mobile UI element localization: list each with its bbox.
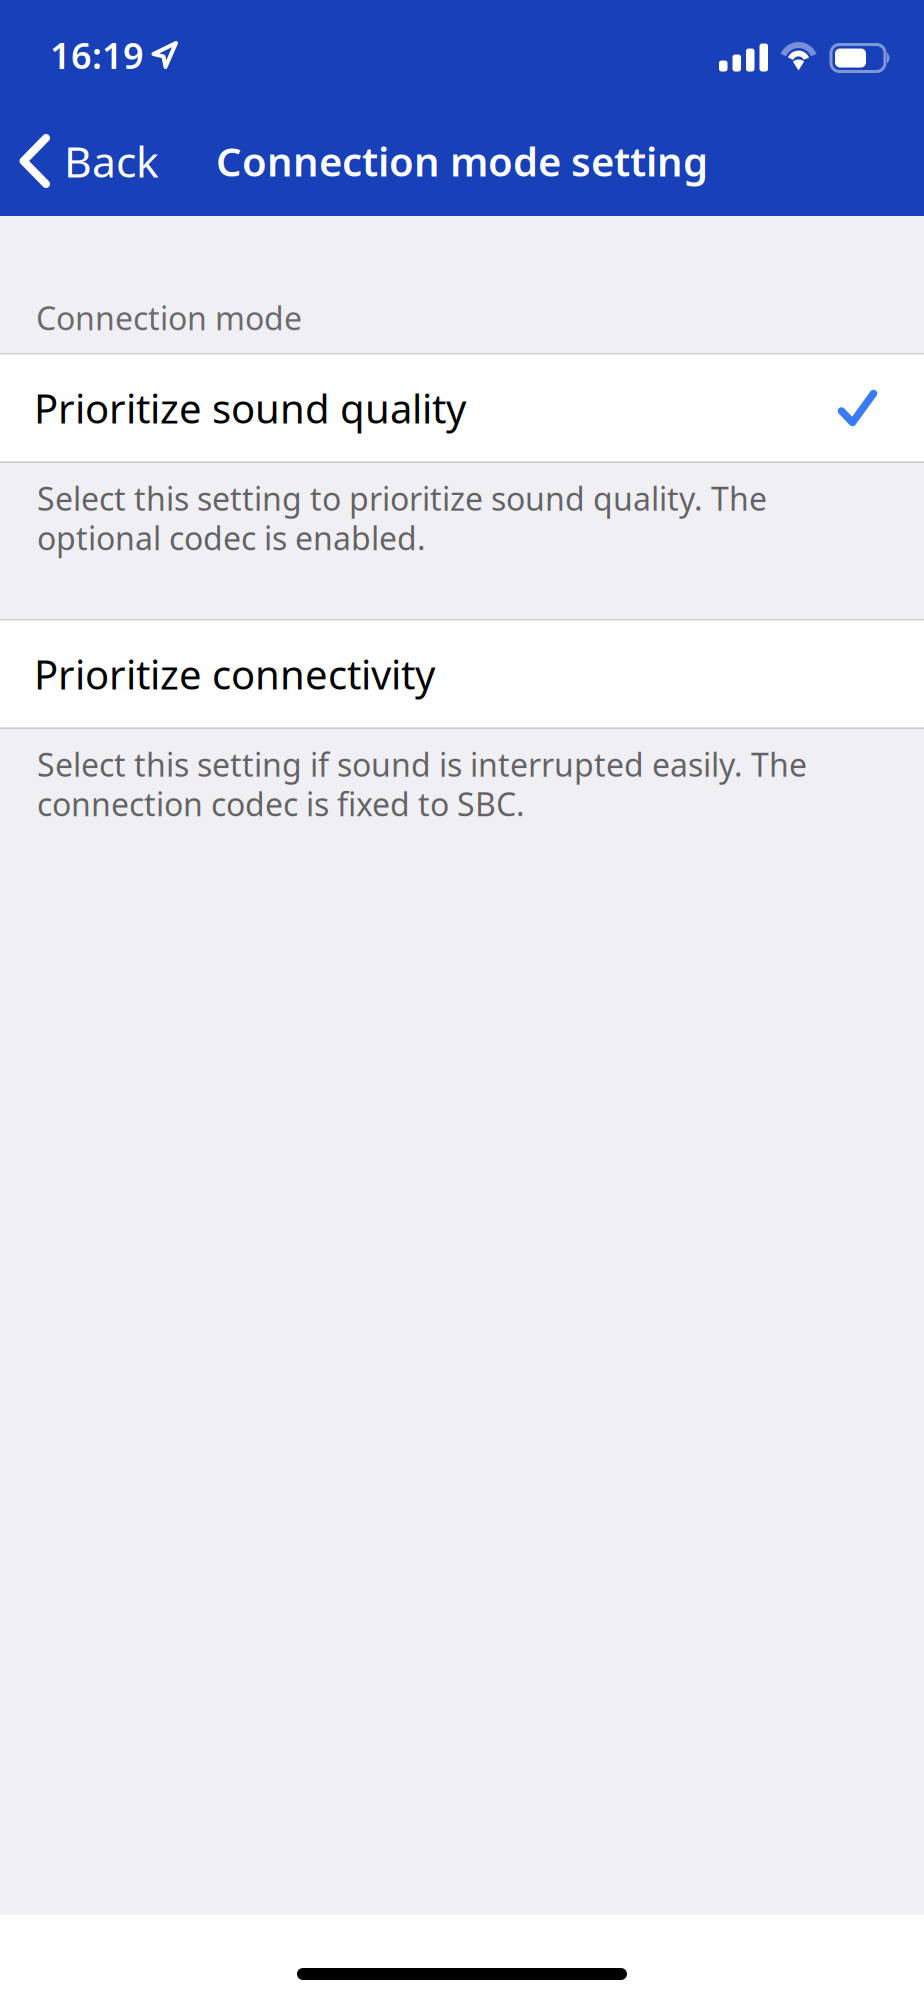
staticText: Back xyxy=(64,133,159,189)
staticText: Select this setting if sound is interrup… xyxy=(37,743,807,825)
staticText: Select this setting to prioritize sound … xyxy=(37,477,767,559)
staticText: Connection mode xyxy=(36,296,302,339)
staticText: Prioritize connectivity xyxy=(34,647,435,700)
button[interactable]: Prioritize sound quality xyxy=(0,354,924,461)
button[interactable]: Prioritize connectivity xyxy=(0,620,924,727)
button[interactable]: Back xyxy=(0,126,175,196)
staticText: Prioritize sound quality xyxy=(34,381,466,434)
staticText: Connection mode setting xyxy=(216,134,708,187)
staticText: 16:19 xyxy=(50,31,144,79)
